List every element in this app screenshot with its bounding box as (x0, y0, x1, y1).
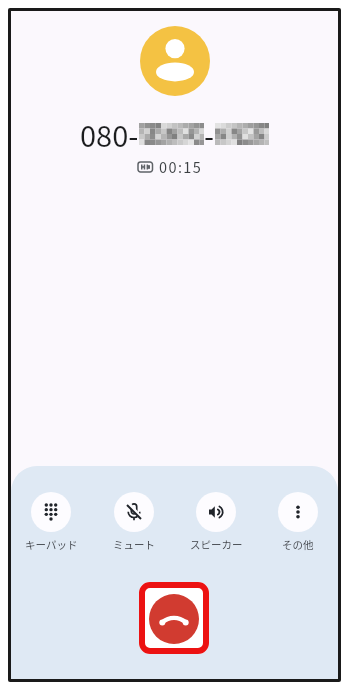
button[interactable]: その他 (258, 492, 338, 552)
staticText: 080- (80, 113, 139, 155)
staticText: ミュート (113, 537, 155, 552)
staticText: スピーカー (190, 537, 243, 552)
button[interactable]: スピーカー (176, 492, 256, 552)
button[interactable]: ミュート (94, 492, 174, 552)
staticText: 00:15 (159, 156, 203, 177)
staticText: キーパッド (25, 537, 78, 552)
staticText: その他 (282, 537, 314, 552)
staticText: - (204, 113, 215, 155)
button[interactable]: キーパッド (11, 492, 91, 552)
button[interactable] (149, 594, 199, 644)
